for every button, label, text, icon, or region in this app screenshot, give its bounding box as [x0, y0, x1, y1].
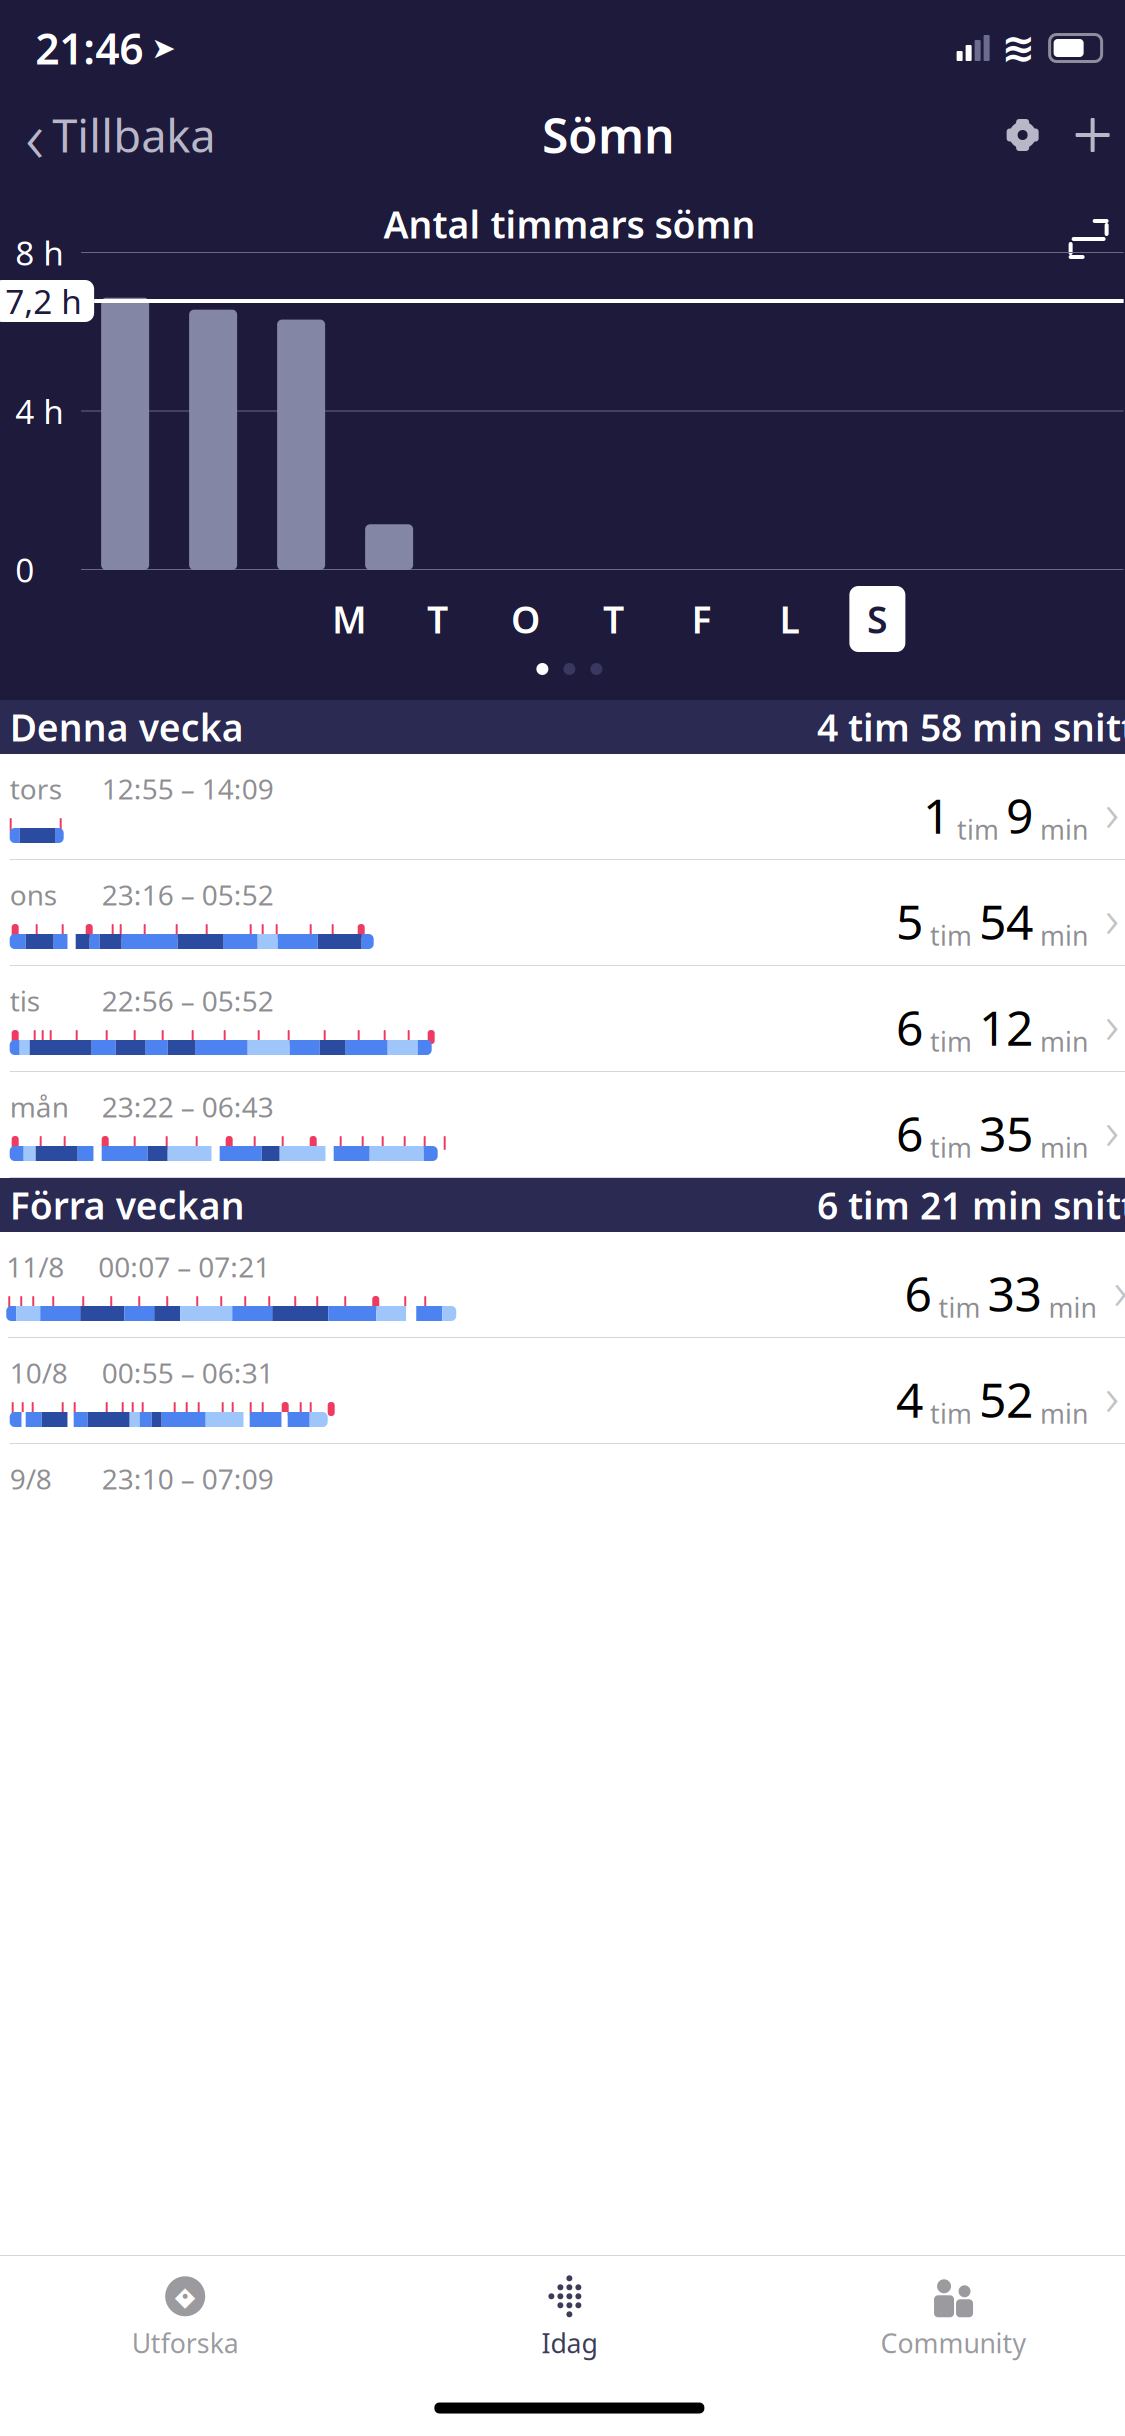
staticText: 00:55 – 06:31 — [102, 1354, 274, 1391]
staticText: › — [1105, 1094, 1119, 1165]
staticText: 8 h — [15, 230, 64, 275]
staticText: 1 — [923, 783, 950, 847]
button[interactable]: Lägg till — [1058, 96, 1125, 174]
staticText: M — [332, 594, 367, 644]
staticText: 11/8 — [6, 1248, 64, 1285]
staticText: Sömn — [542, 103, 675, 167]
staticText: › — [1105, 1360, 1119, 1431]
staticText: 52 — [979, 1367, 1033, 1431]
button[interactable]: Visa helskärm — [1054, 174, 1124, 274]
staticText: › — [1113, 1254, 1125, 1325]
staticText: tim — [923, 1130, 979, 1165]
button[interactable]: ‹ — [11, 96, 229, 174]
staticText: 35 — [979, 1101, 1033, 1165]
staticText: Förra veckan — [10, 1180, 245, 1230]
staticText: 23:22 – 06:43 — [102, 1088, 274, 1125]
staticText: 23:16 – 05:52 — [102, 876, 274, 913]
staticText: 4 — [896, 1367, 923, 1431]
staticText: tim — [931, 1290, 987, 1325]
staticText: 0 — [15, 547, 34, 592]
staticText: 6 — [896, 1101, 923, 1165]
staticText: S — [867, 594, 888, 644]
staticText: Tillbaka — [52, 105, 215, 165]
staticText: 5 — [896, 889, 923, 953]
staticText: › — [1105, 882, 1119, 953]
staticText: tis — [10, 982, 40, 1019]
staticText: Denna vecka — [10, 702, 244, 752]
staticText: 4 h — [15, 389, 64, 433]
staticText: 6 — [904, 1261, 931, 1325]
staticText: min — [1033, 1130, 1088, 1165]
button[interactable]: tis — [0, 966, 1125, 1072]
staticText: Idag — [541, 2325, 597, 2361]
staticText: 23:10 – 07:09 — [102, 1460, 274, 1497]
staticText: T — [603, 594, 624, 644]
button[interactable]: tors — [0, 754, 1125, 860]
button[interactable]: mån — [0, 1072, 1125, 1178]
staticText: Utforska — [132, 2325, 239, 2361]
button[interactable]: 10/8 — [0, 1338, 1125, 1444]
staticText: 7,2 h — [5, 279, 82, 323]
staticText: tim — [923, 918, 979, 953]
staticText: Community — [880, 2325, 1026, 2361]
staticText: tim — [923, 1396, 979, 1431]
staticText: min — [1041, 1290, 1096, 1325]
staticText: min — [1033, 918, 1088, 953]
staticText: 9 — [1006, 783, 1033, 847]
staticText: › — [1105, 776, 1119, 847]
button[interactable]: ons — [0, 860, 1125, 966]
button[interactable]: ◆ — [0, 2265, 377, 2371]
staticText: › — [1105, 988, 1119, 1059]
staticText: T — [427, 594, 448, 644]
staticText: min — [1033, 812, 1088, 847]
staticText: 12:55 – 14:09 — [102, 770, 274, 807]
staticText: ≋ — [1002, 25, 1036, 71]
staticText: min — [1033, 1024, 1088, 1059]
staticText: tim — [950, 812, 1006, 847]
staticText: ➤ — [151, 31, 176, 65]
staticText: 22:56 – 05:52 — [102, 982, 274, 1019]
staticText: 9/8 — [10, 1460, 52, 1497]
staticText: ons — [10, 876, 57, 913]
staticText: 4 tim 58 min snitt — [817, 702, 1125, 752]
staticText: L — [779, 594, 799, 644]
staticText: Antal timmars sömn — [383, 199, 755, 249]
staticText: ◆ — [175, 2281, 196, 2311]
staticText: 10/8 — [10, 1354, 68, 1391]
button[interactable]: Community — [761, 2265, 1125, 2371]
staticText: 54 — [979, 889, 1033, 953]
staticText: O — [511, 594, 540, 644]
staticText: 00:07 – 07:21 — [98, 1248, 270, 1285]
staticText: tors — [10, 770, 62, 807]
button[interactable]: Inställningar — [988, 96, 1058, 174]
staticText: min — [1033, 1396, 1088, 1431]
staticText: 12 — [979, 995, 1033, 1059]
staticText: 33 — [987, 1261, 1041, 1325]
staticText: 6 tim 21 min snitt — [817, 1180, 1125, 1230]
button[interactable]: Idag — [377, 2265, 761, 2371]
button[interactable]: 11/8 — [0, 1232, 1125, 1338]
staticText: F — [691, 594, 711, 644]
staticText: 6 — [896, 995, 923, 1059]
staticText: ‹ — [25, 87, 44, 183]
staticText: 21:46 — [35, 20, 143, 76]
staticText: mån — [10, 1088, 69, 1125]
staticText: tim — [923, 1024, 979, 1059]
